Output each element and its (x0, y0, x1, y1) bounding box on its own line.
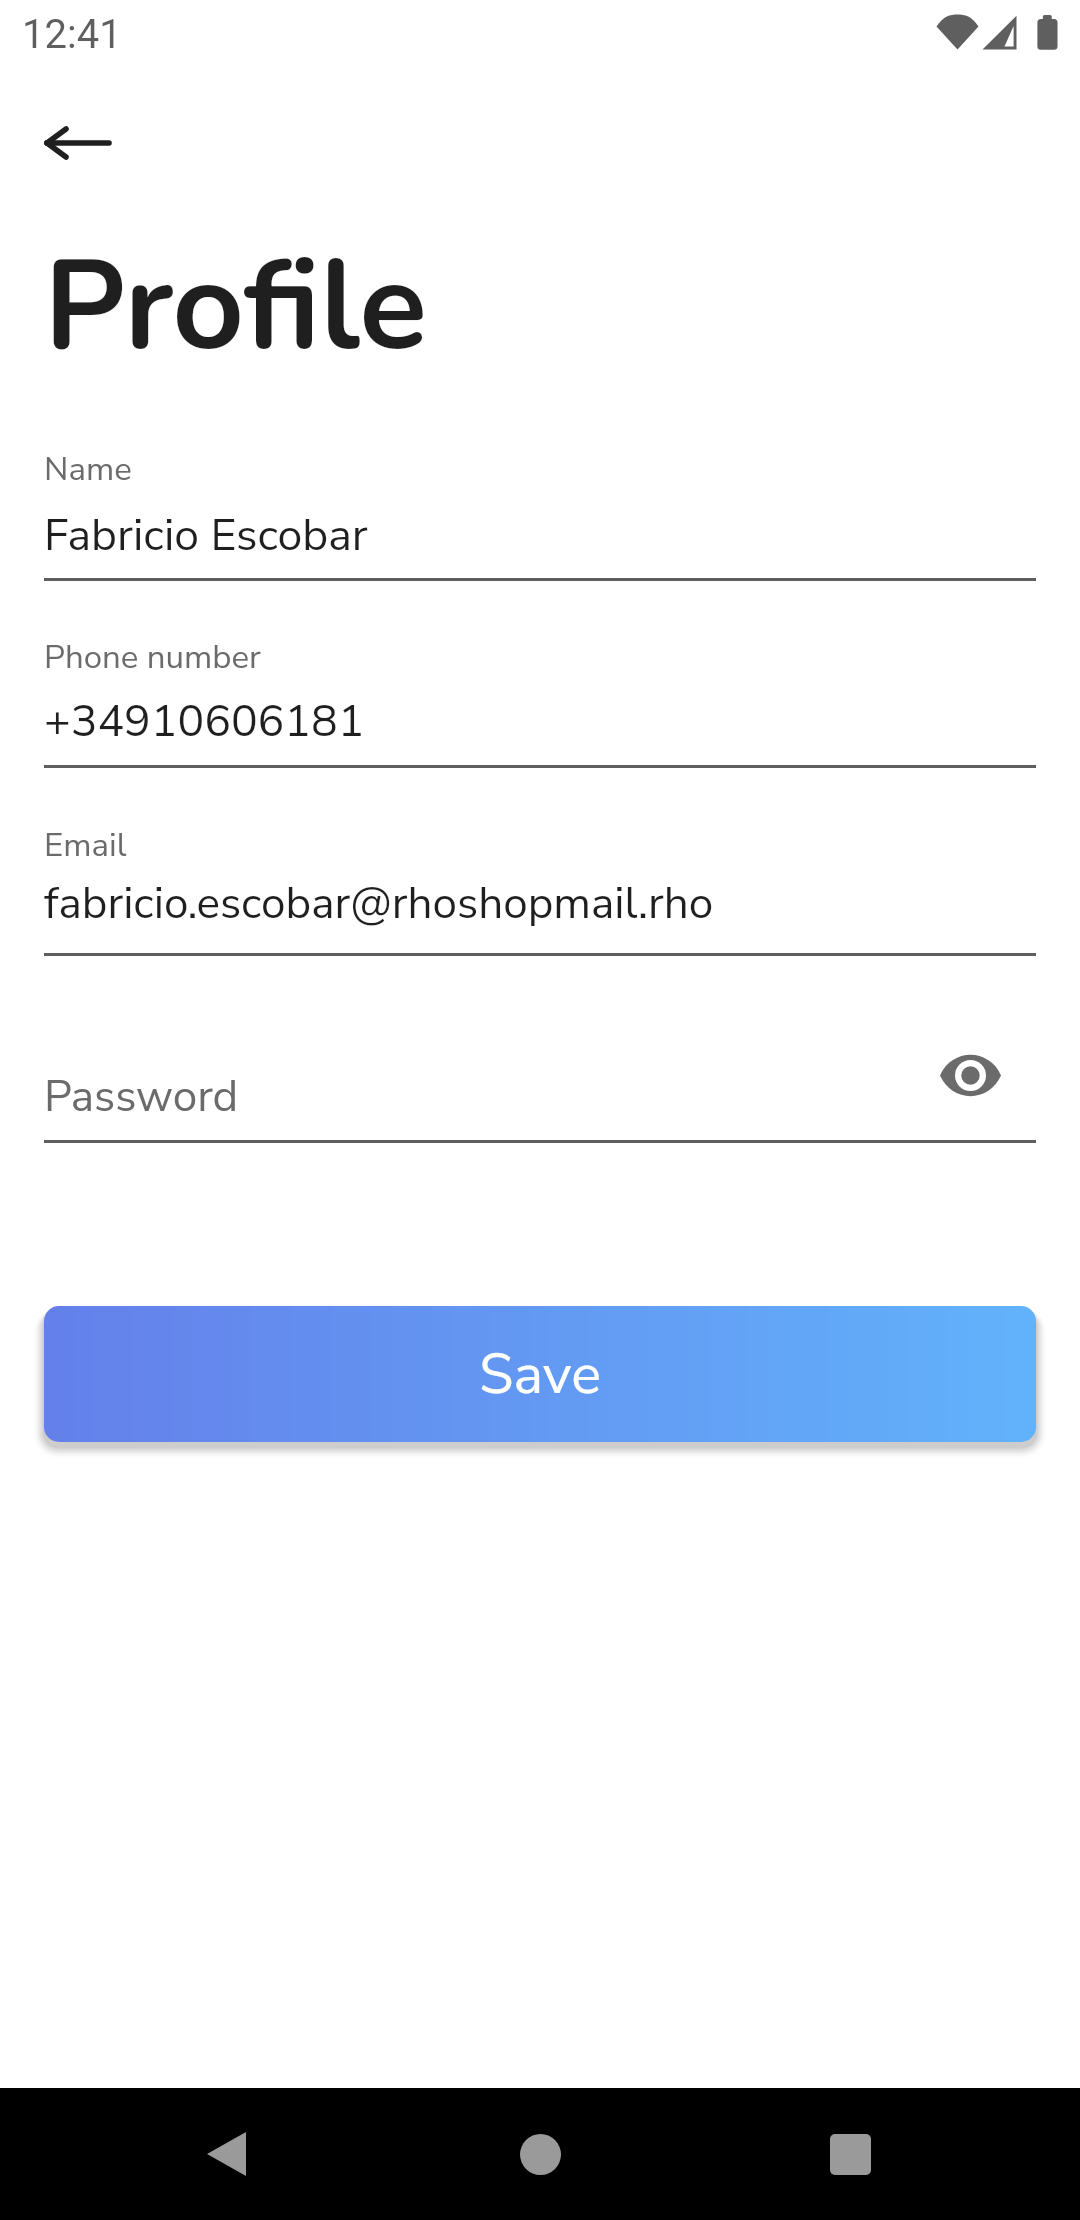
staticText: Save (479, 1336, 602, 1412)
staticText: Email (44, 823, 127, 868)
button[interactable]: Back (166, 2114, 286, 2194)
staticText: Password (44, 1067, 239, 1127)
button[interactable]: Home (480, 2114, 600, 2194)
button[interactable]: Show password (924, 1037, 1016, 1113)
staticText: fabricio.escobar@rhoshopmail.rho (44, 874, 714, 934)
staticText: 12:41 (22, 11, 122, 58)
staticText: +34910606181 (44, 691, 365, 752)
button[interactable]: Recent apps (790, 2114, 910, 2194)
staticText: Name (44, 447, 132, 492)
staticText: Fabricio Escobar (44, 505, 368, 566)
staticText: Phone number (44, 635, 261, 680)
staticText: Profile (44, 222, 427, 393)
button[interactable]: Back (14, 104, 124, 184)
button[interactable]: Save (44, 1306, 1036, 1442)
